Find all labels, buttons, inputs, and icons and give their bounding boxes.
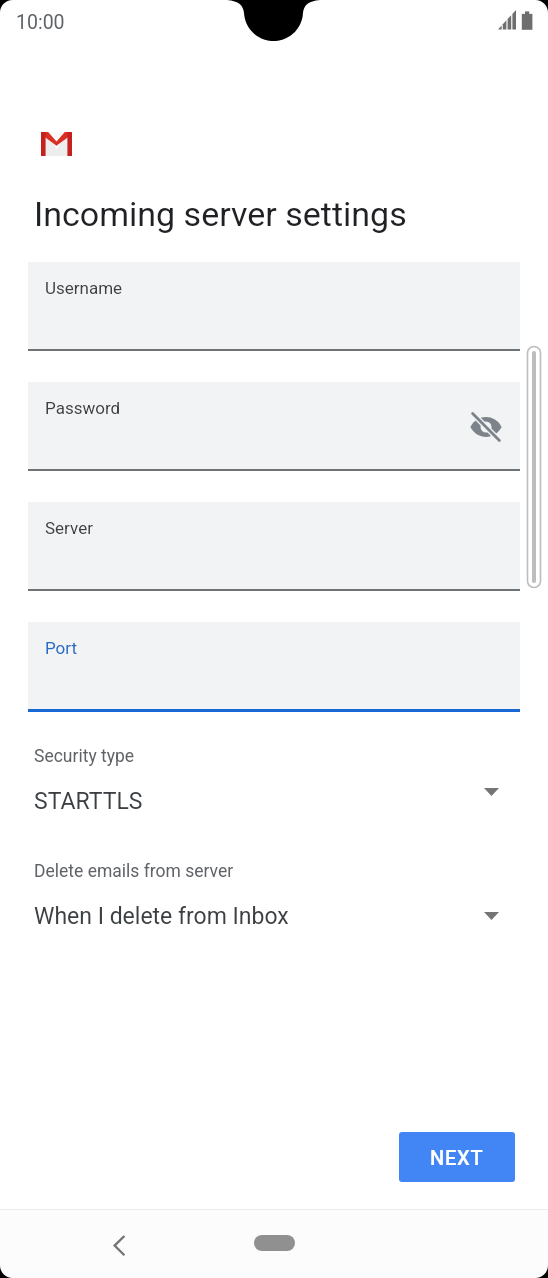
button[interactable]: Toggle password visibility — [460, 401, 512, 453]
button[interactable]: Delete emails from server — [0, 861, 548, 941]
button[interactable]: Server — [28, 502, 520, 589]
button[interactable]: Security type — [0, 746, 548, 826]
button[interactable]: Back — [96, 1220, 144, 1268]
staticText: Password — [45, 398, 121, 418]
staticText: Security type — [34, 746, 135, 767]
staticText: Delete emails from server — [34, 861, 234, 882]
button[interactable]: NEXT — [399, 1132, 515, 1182]
staticText: Port — [45, 638, 78, 658]
staticText: NEXT — [430, 1146, 484, 1169]
staticText: Incoming server settings — [34, 194, 407, 234]
staticText: Server — [45, 518, 93, 538]
button[interactable]: Home — [254, 1235, 295, 1251]
button[interactable]: Username — [28, 262, 520, 349]
staticText: 10:00 — [16, 11, 65, 34]
staticText: STARTTLS — [34, 788, 143, 815]
staticText: Username — [45, 278, 123, 298]
button[interactable]: Port — [28, 622, 520, 709]
button[interactable]: Password — [28, 382, 520, 469]
staticText: When I delete from Inbox — [34, 903, 289, 930]
